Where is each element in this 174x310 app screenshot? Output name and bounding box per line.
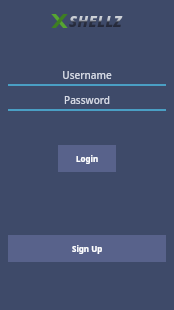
staticText: Username [8,68,166,82]
button[interactable]: Login [58,145,116,172]
staticText: Password [8,93,166,107]
staticText: Login [76,153,99,164]
button[interactable]: Sign Up [8,235,166,262]
staticText: SHELLZ [69,11,123,31]
button[interactable]: Username [8,68,166,86]
button[interactable]: Password [8,93,166,111]
staticText: Sign Up [72,243,103,254]
